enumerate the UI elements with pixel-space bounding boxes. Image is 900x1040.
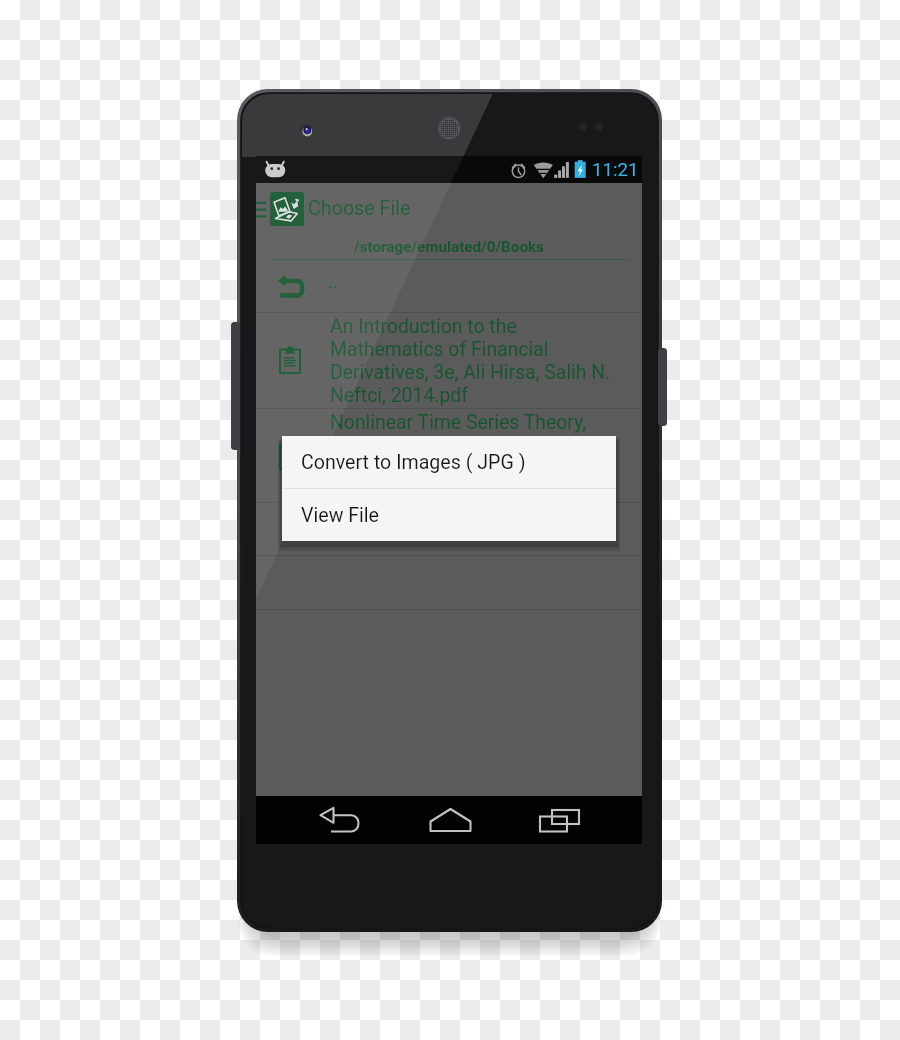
button[interactable]: Home [420,796,482,844]
staticText: An Introduction to the Mathematics of Fi… [330,315,625,407]
button[interactable]: An Introduction to the Mathematics of Fi… [256,313,642,408]
button[interactable]: /storage/emulated/0/Books [256,232,642,262]
button[interactable]: .. [256,262,642,312]
staticText: Convert to Images ( JPG ) [301,451,526,474]
button[interactable]: Nonlinear Time Series Theory, Methods an… [256,409,642,502]
button[interactable]: Convert to Images ( JPG ) [282,436,616,488]
staticText: .. [328,271,338,292]
button[interactable]: View File [282,489,616,541]
staticText: 11:21 [592,159,639,181]
staticText: /storage/emulated/0/Books [256,238,642,256]
staticText: View File [301,504,379,527]
staticText: Choose File [308,197,411,220]
button[interactable]: Back [310,796,372,844]
button[interactable]: Open navigation drawer [256,183,267,232]
staticText: Nonlinear Time Series Theory, Methods an… [330,411,625,503]
button[interactable]: Recent apps [529,796,591,844]
